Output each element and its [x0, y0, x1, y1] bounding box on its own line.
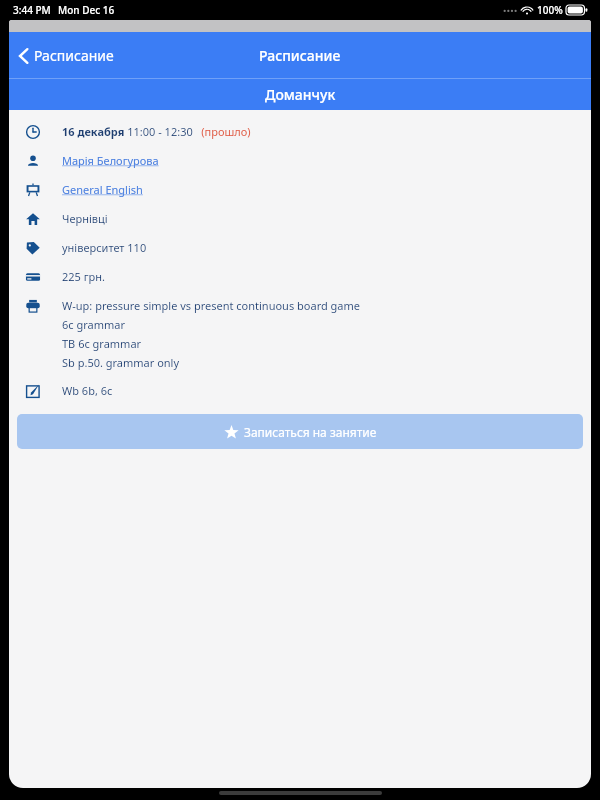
staticText: Доманчук: [265, 85, 336, 104]
staticText: Mon Dec 16: [58, 3, 115, 17]
staticText: Чернівці: [62, 211, 108, 226]
button[interactable]: Марія Белогурова: [62, 153, 159, 168]
button[interactable]: General English: [62, 182, 143, 197]
staticText: університет 110: [62, 240, 147, 255]
staticText: Записаться на занятие: [244, 424, 377, 440]
staticText: TB 6c grammar: [62, 336, 142, 351]
staticText: Sb p.50. grammar only: [62, 355, 180, 370]
staticText: 100%: [537, 3, 563, 17]
staticText: 3:44 PM: [13, 3, 51, 17]
staticText: Расписание: [259, 46, 341, 65]
staticText: 225 грн.: [62, 269, 105, 284]
staticText: 6c grammar: [62, 317, 125, 332]
button[interactable]: Расписание: [14, 39, 118, 72]
button[interactable]: Записаться на занятие: [17, 414, 583, 449]
staticText: W-up: pressure simple vs present continu…: [62, 298, 361, 313]
staticText: Расписание: [34, 46, 114, 65]
staticText: 16 декабря 11:00 - 12:30 (прошло): [62, 124, 251, 139]
staticText: Wb 6b, 6c: [62, 383, 113, 398]
